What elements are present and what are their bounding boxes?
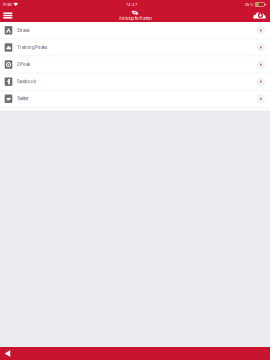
staticText: 2Peak (17, 62, 30, 67)
staticText: 14:47 (126, 2, 137, 7)
staticText: TrainingPeaks (17, 45, 47, 50)
staticText: Verknüpfte Konten (118, 16, 151, 21)
staticText: Facebook (17, 79, 36, 84)
staticText: 35 % (245, 2, 254, 7)
staticText: Strava (17, 28, 29, 33)
staticText: Twitter (17, 96, 29, 101)
button[interactable]: Add account (249, 9, 270, 22)
button[interactable]: TrainingPeaks (0, 39, 270, 56)
staticText: iPad (3, 2, 11, 7)
button[interactable]: Facebook (0, 73, 270, 90)
button[interactable]: Strava (0, 22, 270, 39)
button[interactable]: Twitter (0, 90, 270, 107)
button[interactable]: Menu (0, 9, 16, 22)
button[interactable]: 2Peak (0, 56, 270, 73)
button[interactable]: Back (0, 347, 15, 360)
